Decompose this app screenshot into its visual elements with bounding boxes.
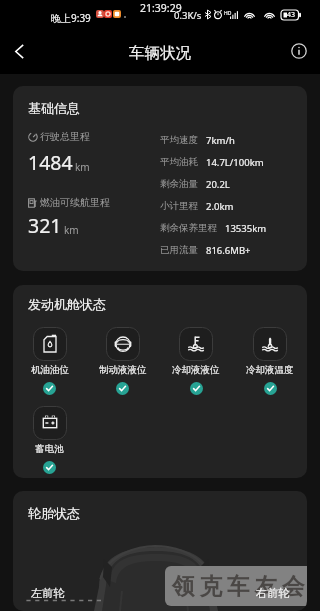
staticText: 机油油位: [31, 364, 69, 376]
staticText: 剩余保养里程: [160, 222, 217, 234]
staticText: 0.3K/s: [174, 9, 202, 22]
staticText: 剩余油量: [160, 178, 198, 190]
staticText: 冷却液液位: [172, 364, 220, 376]
staticText: 发动机舱状态: [28, 296, 106, 312]
staticText: 车辆状况: [129, 43, 191, 63]
staticText: km: [75, 160, 90, 174]
staticText: 平均油耗: [160, 156, 198, 168]
staticText: 燃油可续航里程: [40, 196, 110, 209]
staticText: km: [64, 223, 79, 237]
staticText: 小计里程: [160, 200, 198, 212]
staticText: 43: [287, 10, 296, 20]
button[interactable]: 冷却液温度: [233, 327, 307, 395]
staticText: 14.7L/100km: [206, 156, 264, 169]
staticText: 2.0km: [206, 200, 234, 213]
staticText: HD: [224, 10, 232, 17]
staticText: 321: [28, 212, 62, 239]
staticText: 左前轮: [31, 586, 65, 600]
staticText: 蓄电池: [35, 443, 64, 455]
staticText: 1484: [28, 149, 73, 176]
staticText: 21:39:29: [140, 1, 182, 15]
staticText: 已用流量: [160, 244, 198, 256]
staticText: 基础信息: [28, 100, 80, 116]
staticText: 右前轮: [256, 586, 290, 600]
staticText: 行驶总里程: [40, 130, 90, 143]
staticText: 轮胎状态: [28, 505, 80, 521]
staticText: 816.6MB+: [206, 244, 251, 257]
button[interactable]: 机油油位: [13, 327, 86, 395]
button[interactable]: 蓄电池: [13, 406, 86, 474]
staticText: 晚上9:39: [51, 11, 91, 25]
staticText: 7km/h: [206, 134, 235, 147]
staticText: 制动液液位: [99, 364, 147, 376]
staticText: 20.2L: [206, 178, 230, 191]
staticText: 领克车友会: [172, 572, 307, 600]
staticText: 13535km: [225, 222, 267, 235]
button[interactable]: 制动液液位: [86, 327, 159, 395]
button[interactable]: Info: [278, 28, 320, 74]
staticText: 冷却液温度: [246, 364, 294, 376]
button[interactable]: 冷却液液位: [159, 327, 233, 395]
button[interactable]: Back: [0, 28, 42, 74]
staticText: 平均速度: [160, 134, 198, 146]
